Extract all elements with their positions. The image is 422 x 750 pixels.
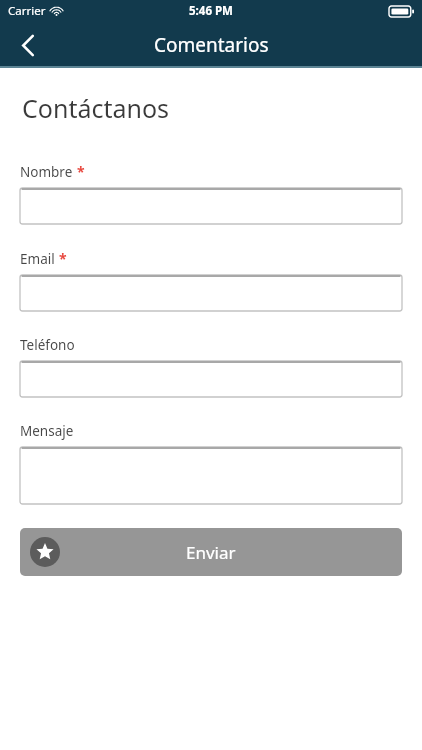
button[interactable] (20, 188, 402, 224)
staticText: Comentarios (154, 32, 269, 58)
staticText: * (59, 249, 67, 268)
staticText: 5:46 PM (189, 3, 233, 19)
staticText: Carrier (8, 3, 46, 19)
staticText: Email (20, 250, 55, 268)
staticText: Mensaje (20, 422, 74, 440)
staticText: Contáctanos (22, 91, 170, 125)
staticText: Enviar (186, 541, 236, 564)
button[interactable]: Back (0, 22, 56, 68)
button[interactable] (20, 275, 402, 311)
button[interactable] (20, 361, 402, 397)
button[interactable] (20, 447, 402, 504)
staticText: Teléfono (20, 336, 75, 354)
staticText: * (77, 162, 85, 181)
staticText: Nombre (20, 163, 73, 181)
button[interactable]: Enviar (20, 528, 402, 576)
